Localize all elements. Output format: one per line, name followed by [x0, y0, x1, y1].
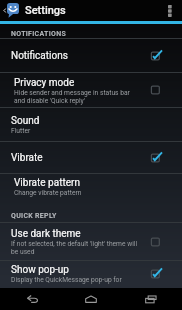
- button[interactable]: Navigate up: [0, 0, 23, 21]
- button[interactable]: Sound: [0, 108, 182, 141]
- button[interactable]: Notifications: [0, 39, 182, 72]
- staticText: Change vibrate pattern: [14, 189, 82, 197]
- staticText: Show pop-up: [11, 264, 69, 276]
- button[interactable]: Use dark theme: [0, 223, 182, 260]
- staticText: Display the QuickMessage pop-up for: [11, 276, 122, 284]
- button[interactable]: Recent apps: [123, 288, 179, 310]
- staticText: Privacy mode: [14, 77, 75, 89]
- staticText: Vibrate: [11, 152, 43, 164]
- staticText: Settings: [25, 4, 66, 17]
- button[interactable]: Show pop-up: [0, 261, 182, 287]
- button[interactable]: Privacy mode: [0, 73, 182, 107]
- button[interactable]: More options: [160, 0, 180, 21]
- staticText: Notifications: [11, 50, 68, 62]
- staticText: Flutter: [11, 127, 31, 135]
- button[interactable]: Back: [4, 288, 60, 310]
- button[interactable]: Home: [63, 288, 119, 310]
- staticText: Vibrate pattern: [14, 177, 80, 189]
- button[interactable]: Vibrate pattern: [0, 174, 182, 199]
- staticText: Sound: [11, 115, 40, 127]
- staticText: NOTIFICATIONS: [11, 30, 67, 38]
- staticText: If not selected, the default 'light' the…: [11, 240, 139, 255]
- staticText: Use dark theme: [11, 228, 81, 240]
- staticText: Hide sender and message in status bar an…: [14, 89, 139, 104]
- button[interactable]: Vibrate: [0, 142, 182, 173]
- staticText: QUICK REPLY: [11, 212, 57, 220]
